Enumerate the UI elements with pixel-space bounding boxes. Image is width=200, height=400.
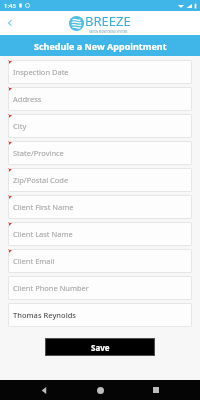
staticText: City — [13, 121, 27, 131]
staticText: Client Email — [13, 256, 55, 266]
staticText: Save — [91, 342, 110, 353]
button[interactable]: Back — [32, 380, 56, 400]
button[interactable]: Client Last Name — [8, 222, 192, 246]
staticText: RADON MONITORING SYSTEMS — [89, 30, 128, 34]
staticText: 1:45 — [4, 2, 16, 10]
staticText: Inspection Date — [13, 67, 69, 77]
staticText: Client Phone Number — [13, 283, 89, 293]
button[interactable]: State/Province — [8, 141, 192, 165]
button[interactable]: Save — [45, 338, 155, 356]
button[interactable]: Recent apps — [144, 380, 168, 400]
staticText: Client Last Name — [13, 229, 73, 239]
staticText: BREEZE — [85, 12, 131, 30]
button[interactable]: Zip/Postal Code — [8, 168, 192, 192]
staticText: Thomas Reynolds — [13, 310, 76, 320]
button[interactable]: Back — [0, 13, 20, 33]
button[interactable]: Client First Name — [8, 195, 192, 219]
button[interactable]: Address — [8, 87, 192, 111]
button[interactable]: Home — [88, 380, 112, 400]
button[interactable]: Thomas Reynolds — [8, 303, 192, 327]
button[interactable]: Client Email — [8, 249, 192, 273]
button[interactable]: City — [8, 114, 192, 138]
staticText: Client First Name — [13, 202, 74, 212]
staticText: Address — [13, 94, 42, 104]
staticText: Schedule a New Appointment — [34, 40, 167, 52]
button[interactable]: Inspection Date — [8, 60, 192, 84]
button[interactable]: Client Phone Number — [8, 276, 192, 300]
staticText: Zip/Postal Code — [13, 175, 69, 185]
staticText: State/Province — [13, 148, 64, 158]
